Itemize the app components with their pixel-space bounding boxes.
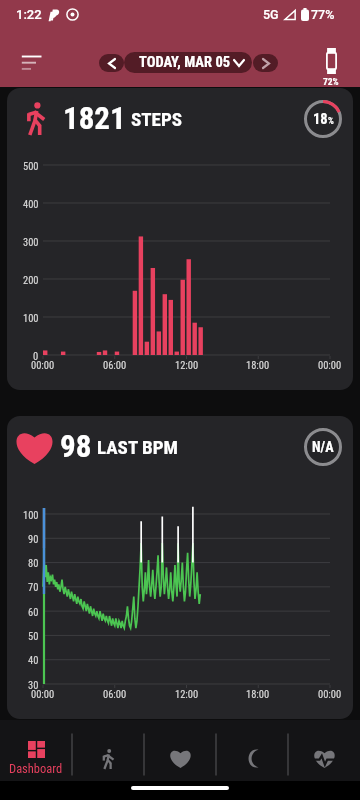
staticText: 12:00	[175, 359, 199, 371]
button[interactable]: Previous day	[99, 54, 124, 72]
button[interactable]: 1821	[7, 88, 353, 390]
button[interactable]: Dashboard	[0, 720, 72, 781]
staticText: 06:00	[103, 359, 127, 371]
staticText: 30	[28, 679, 39, 691]
staticText: 18	[313, 111, 328, 128]
staticText: 80	[28, 557, 39, 569]
button[interactable]: ECG	[288, 720, 360, 781]
staticText: 0	[33, 350, 39, 362]
staticText: 5G	[263, 7, 279, 22]
button[interactable]: Not available	[304, 428, 342, 466]
button[interactable]: TODAY, MAR 05	[124, 52, 252, 73]
staticText: STEPS	[131, 108, 182, 130]
button[interactable]: Sleep	[216, 720, 288, 781]
staticText: 00:00	[318, 359, 342, 371]
staticText: LAST BPM	[97, 436, 178, 458]
staticText: 12:00	[175, 688, 199, 700]
staticText: 18:00	[246, 359, 270, 371]
button[interactable]: Open navigation menu	[21, 55, 42, 71]
staticText: 18:00	[246, 688, 270, 700]
staticText: 00:00	[31, 359, 55, 371]
staticText: 200	[23, 274, 39, 286]
staticText: 1821	[63, 100, 126, 136]
staticText: 90	[28, 533, 39, 545]
button[interactable]: 98	[7, 416, 353, 719]
staticText: 1:22	[16, 7, 42, 22]
staticText: 100	[23, 312, 39, 324]
staticText: 00:00	[31, 688, 55, 700]
staticText: 60	[28, 606, 39, 618]
staticText: 70	[28, 581, 39, 593]
staticText: 77%	[311, 7, 335, 22]
staticText: 400	[23, 198, 39, 210]
staticText: Dashboard	[9, 761, 63, 776]
staticText: 100	[23, 509, 39, 521]
staticText: %	[328, 116, 334, 127]
staticText: TODAY, MAR 05	[139, 54, 231, 71]
button[interactable]: Activity	[72, 720, 144, 781]
button[interactable]: Next day	[253, 54, 278, 72]
staticText: 00:00	[318, 688, 342, 700]
staticText: 98	[60, 428, 92, 464]
button[interactable]: Goal 18 percent	[304, 100, 342, 138]
staticText: 40	[28, 654, 39, 666]
button[interactable]: Heart rate	[144, 720, 216, 781]
staticText: 72%	[323, 76, 339, 87]
staticText: 50	[28, 630, 39, 642]
staticText: 06:00	[103, 688, 127, 700]
staticText: 300	[23, 236, 39, 248]
button[interactable]: Watch battery 72 percent	[313, 48, 349, 87]
staticText: N/A	[312, 439, 334, 455]
staticText: 500	[23, 160, 39, 172]
